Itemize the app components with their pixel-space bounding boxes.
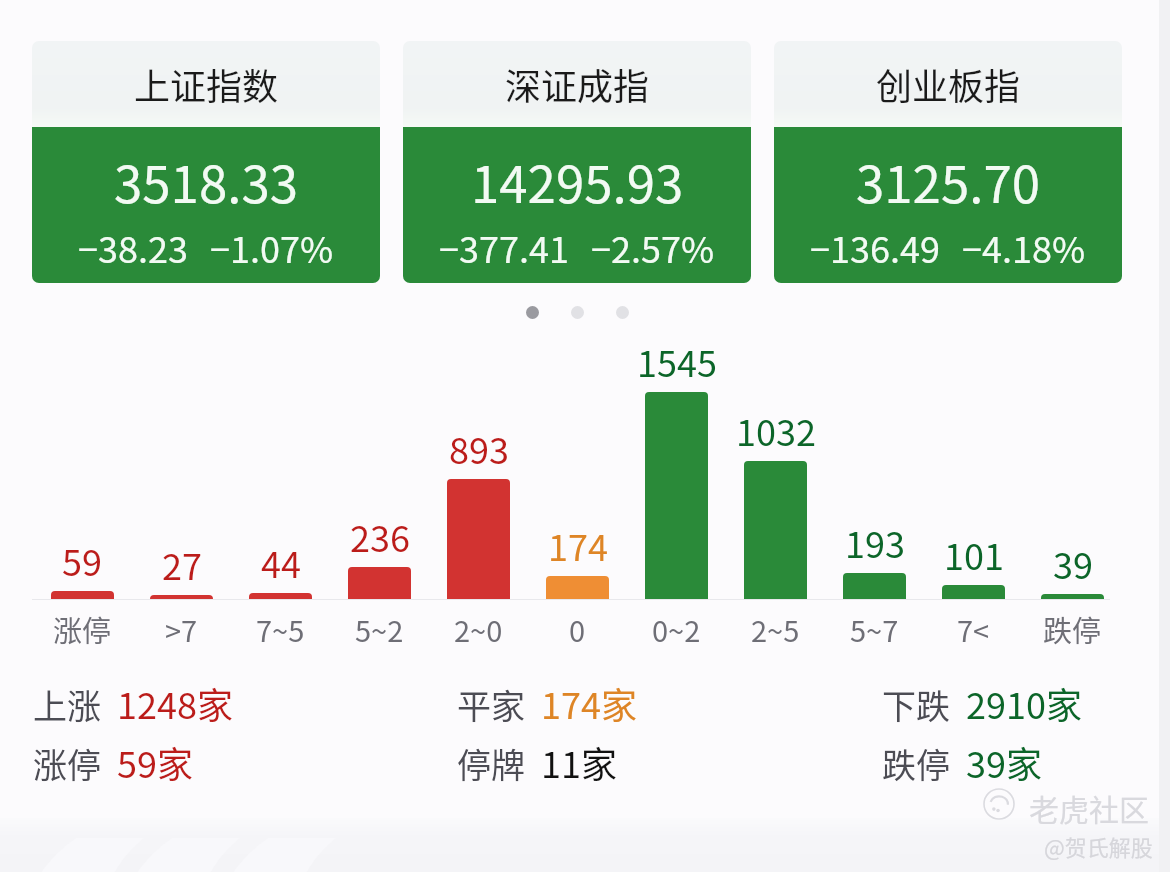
button[interactable]: Page indicator: [571, 306, 584, 319]
staticText: 1032: [736, 404, 816, 456]
button[interactable]: Page indicator: [616, 306, 629, 319]
staticText: 2~5: [751, 608, 800, 650]
staticText: −136.49: [810, 221, 940, 273]
staticText: 平家: [457, 680, 525, 729]
staticText: 59: [62, 534, 102, 586]
button[interactable]: 平家: [457, 677, 637, 729]
staticText: −377.41: [439, 221, 569, 273]
staticText: 跌停: [1043, 608, 1102, 650]
staticText: 涨停: [33, 739, 101, 788]
staticText: 上涨: [33, 680, 101, 729]
staticText: −1.07%: [210, 221, 334, 273]
staticText: 1248家: [117, 677, 233, 729]
staticText: 2910家: [966, 677, 1082, 729]
staticText: 5~2: [355, 608, 404, 650]
staticText: 27: [162, 538, 202, 590]
button[interactable]: 创业板指: [774, 41, 1122, 283]
staticText: 59家: [117, 736, 193, 788]
staticText: 5~7: [850, 608, 899, 650]
staticText: 14295.93: [471, 144, 684, 218]
staticText: 39家: [966, 736, 1042, 788]
staticText: 2~0: [454, 608, 503, 650]
staticText: −38.23: [78, 221, 188, 273]
button[interactable]: 下跌: [882, 677, 1082, 729]
staticText: −2.57%: [591, 221, 715, 273]
staticText: 创业板指: [876, 58, 1021, 110]
staticText: 老虎社区: [1029, 786, 1149, 829]
staticText: 7~5: [256, 608, 305, 650]
staticText: 1545: [637, 335, 717, 387]
staticText: 39: [1053, 537, 1093, 589]
button[interactable]: 深证成指: [403, 41, 751, 283]
button[interactable]: Page indicator: [526, 306, 539, 319]
staticText: 3125.70: [856, 144, 1041, 218]
staticText: 174家: [541, 677, 637, 729]
button[interactable]: 上涨: [33, 677, 233, 729]
staticText: 停牌: [457, 739, 525, 788]
button[interactable]: 停牌: [457, 736, 617, 788]
staticText: 3518.33: [114, 144, 299, 218]
staticText: 11家: [541, 736, 617, 788]
staticText: 101: [944, 528, 1004, 580]
staticText: 0~2: [652, 608, 701, 650]
staticText: 下跌: [882, 680, 950, 729]
staticText: 上证指数: [134, 58, 279, 110]
staticText: 193: [845, 516, 905, 568]
staticText: 7<: [957, 608, 990, 650]
button[interactable]: 涨停: [33, 736, 193, 788]
staticText: 174: [548, 519, 608, 571]
staticText: 涨停: [53, 608, 112, 650]
button[interactable]: 跌停: [882, 736, 1042, 788]
staticText: −4.18%: [962, 221, 1086, 273]
button[interactable]: 上证指数: [32, 41, 380, 283]
staticText: 236: [350, 510, 410, 562]
staticText: @贺氏解股: [1044, 830, 1153, 862]
staticText: 893: [449, 422, 509, 474]
staticText: 44: [261, 536, 301, 588]
staticText: 深证成指: [505, 58, 650, 110]
staticText: >7: [165, 608, 198, 650]
staticText: 0: [569, 608, 586, 650]
staticText: 跌停: [882, 739, 950, 788]
